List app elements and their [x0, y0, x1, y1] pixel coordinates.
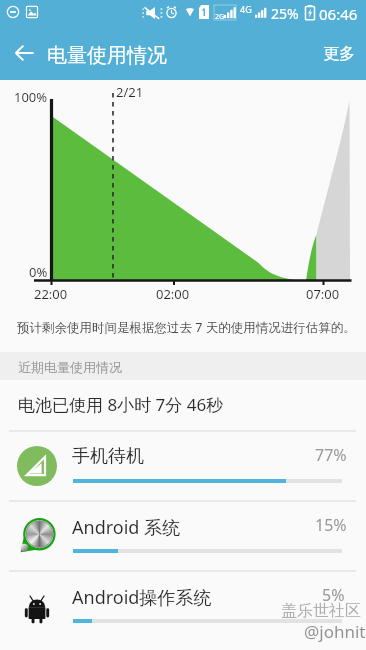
button[interactable]: 返回 [1, 30, 47, 76]
staticText: 15% [315, 514, 347, 536]
staticText: 预计剩余使用时间是根据您过去 7 天的使用情况进行估算的。 [17, 319, 356, 336]
staticText: 4G [240, 3, 252, 15]
staticText: Android操作系统 [72, 585, 212, 610]
staticText: 25% [271, 4, 299, 23]
staticText: 77% [315, 444, 347, 466]
staticText: 02:00 [156, 285, 190, 303]
staticText: 100% [14, 88, 48, 106]
staticText: 手机待机 [72, 445, 144, 468]
staticText: 5% [322, 584, 345, 606]
staticText: 2/21 [116, 83, 144, 101]
staticText: 2G [215, 12, 225, 22]
staticText: @johnit [304, 620, 366, 643]
staticText: 更多 [323, 44, 355, 64]
button[interactable]: 更多 [312, 31, 366, 75]
staticText: 盖乐世社区 [281, 601, 361, 621]
staticText: 近期电量使用情况 [18, 359, 122, 375]
button[interactable]: Android操作系统 [0, 572, 366, 642]
staticText: 07:00 [306, 285, 340, 303]
staticText: 电池已使用 8小时 7分 46秒 [18, 393, 224, 416]
staticText: 06:46 [319, 4, 358, 24]
button[interactable]: Android 系统 [0, 502, 366, 572]
staticText: 电量使用情况 [47, 43, 167, 68]
staticText: 22:00 [34, 285, 68, 303]
staticText: Android 系统 [72, 515, 181, 540]
staticText: 0% [29, 263, 48, 281]
button[interactable]: 手机待机 [0, 432, 366, 502]
